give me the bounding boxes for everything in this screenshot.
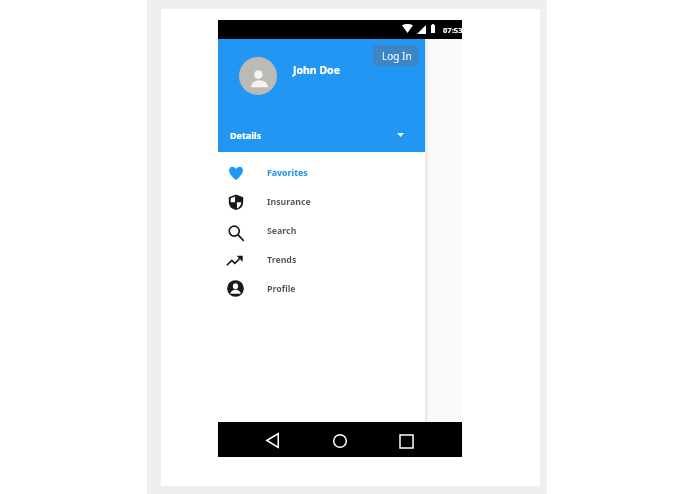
button[interactable]: Home [323, 422, 357, 457]
button[interactable]: Back [255, 422, 289, 457]
button[interactable]: Insurance [218, 188, 425, 217]
staticText: Favorites [267, 167, 308, 179]
button[interactable]: Log In [373, 45, 418, 66]
button[interactable]: Search [218, 217, 425, 246]
staticText: Insurance [267, 196, 311, 208]
staticText: Log In [382, 49, 412, 63]
staticText: Trends [267, 254, 297, 266]
button[interactable]: Trends [218, 246, 425, 275]
button[interactable]: Profile [218, 275, 425, 304]
button[interactable]: Recents [389, 422, 423, 457]
staticText: Search [267, 225, 297, 237]
button[interactable]: Favorites [218, 159, 425, 188]
staticText: Details [230, 129, 262, 141]
staticText: 07:53 [443, 25, 463, 35]
staticText: John Doe [293, 63, 340, 77]
button[interactable]: Details [218, 120, 425, 152]
staticText: Profile [267, 283, 296, 295]
